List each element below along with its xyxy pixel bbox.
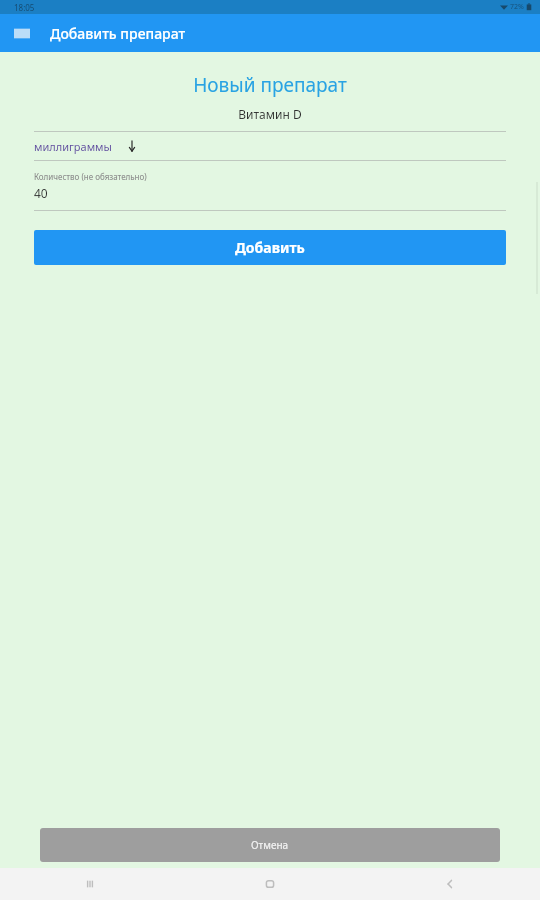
staticText: Добавить (235, 238, 305, 257)
staticText: Новый препарат (0, 72, 540, 98)
staticText: Витамин D (0, 106, 540, 122)
button[interactable]: Добавить (34, 230, 506, 265)
staticText: 72% (510, 2, 524, 12)
staticText: Количество (не обязательно) (34, 171, 147, 182)
staticText: миллиграммы (34, 139, 112, 154)
staticText: Добавить препарат (50, 24, 186, 43)
staticText: Отмена (251, 838, 289, 852)
button[interactable]: Главный экран (180, 868, 360, 900)
staticText: 40 (34, 185, 48, 201)
button[interactable]: Отмена (40, 828, 500, 862)
staticText: 18:05 (14, 2, 35, 13)
button[interactable]: Меню (8, 19, 36, 47)
button[interactable]: миллиграммы (0, 132, 540, 160)
other: Выбрать единицы (126, 140, 138, 152)
button[interactable]: Недавние (0, 868, 180, 900)
